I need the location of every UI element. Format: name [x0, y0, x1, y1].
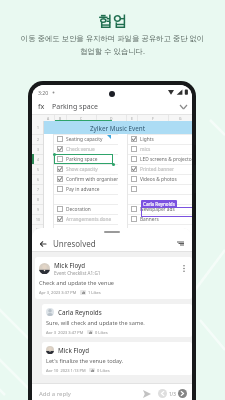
staticText: 1 Likes	[88, 290, 101, 295]
staticText: 4	[37, 157, 39, 162]
button[interactable]: Filter	[175, 238, 186, 249]
button[interactable]: Arrangements done	[54, 214, 118, 224]
staticText: 이동 중에도 보안을 유지하며 파일을 공유하고 중단 없이 협업할 수 있습니…	[6, 33, 219, 56]
staticText: 11	[36, 227, 40, 232]
staticText: Mick Floyd	[58, 346, 90, 354]
staticText: A	[47, 116, 50, 121]
staticText: Newspaper ads	[140, 206, 175, 213]
staticText: 15	[36, 267, 40, 272]
staticText: 3	[37, 147, 39, 152]
staticText: Confirm with organisers	[66, 176, 118, 183]
button[interactable]: Pay in advance	[54, 184, 118, 194]
staticText: 9	[37, 207, 39, 212]
staticText: Printed banner	[140, 166, 174, 173]
staticText: Zylker Music Event	[90, 124, 146, 132]
staticText: D	[110, 116, 113, 121]
staticText: Pay in advance	[66, 186, 100, 193]
button[interactable]: Decoration	[54, 204, 118, 214]
staticText: Apr 10, 2023 1:13 PM	[46, 368, 86, 372]
staticText: Apr 3, 2023 3:47 PM	[46, 330, 84, 334]
staticText: Apr 3, 2023 3:37 PM	[39, 290, 77, 295]
staticText: Seating capacity	[66, 136, 103, 143]
staticText: G	[179, 116, 182, 121]
staticText: fx	[38, 102, 45, 112]
staticText: Let's finalize the venue today.	[46, 357, 124, 365]
button[interactable]	[54, 224, 118, 234]
staticText: Lights	[140, 136, 154, 143]
button[interactable]: More options	[179, 264, 188, 273]
staticText: 1	[37, 125, 39, 130]
button[interactable]: Lights	[128, 134, 192, 144]
staticText: mics	[140, 146, 151, 153]
staticText: Sure, will check and update the same.	[46, 319, 145, 327]
staticText: Decoration	[66, 206, 91, 213]
staticText: 6	[37, 177, 39, 182]
button[interactable]	[128, 234, 192, 244]
button[interactable]	[128, 194, 192, 204]
button[interactable]: mics	[128, 144, 192, 154]
staticText: Venue	[46, 302, 51, 312]
staticText: Arrangements done	[66, 216, 112, 223]
staticText: 5	[37, 167, 39, 172]
staticText: 0 Likes	[97, 368, 110, 372]
staticText: Parking space	[66, 156, 98, 163]
button[interactable]: Printed banner	[128, 164, 192, 174]
staticText: E	[131, 116, 133, 121]
button[interactable]: Back	[37, 238, 48, 249]
staticText: Check and update the venue	[39, 279, 115, 287]
staticText: 8	[37, 197, 39, 202]
button[interactable]	[128, 224, 192, 234]
staticText: Mick Floyd	[54, 261, 86, 269]
button[interactable]: Check venue	[54, 144, 118, 154]
button[interactable]: LED screens & projectors	[128, 154, 192, 164]
staticText: F	[152, 116, 154, 121]
staticText: Event Checklist A1:G1	[54, 270, 101, 276]
staticText: Check venue	[66, 146, 95, 153]
button[interactable]: Show capacity	[54, 164, 118, 174]
staticText: Carla Reynolds	[58, 308, 102, 316]
staticText: 협업	[0, 12, 225, 30]
staticText: C	[80, 116, 83, 121]
staticText: B	[59, 116, 62, 121]
other: Expand	[180, 105, 187, 109]
staticText: 0 Likes	[95, 330, 108, 334]
button[interactable]: ​	[128, 184, 192, 194]
button[interactable]: Previous comment	[158, 389, 167, 398]
button[interactable]: Videos & photos	[128, 174, 192, 184]
staticText: Equipments	[120, 302, 125, 312]
staticText: Banners	[140, 216, 159, 223]
staticText: Show capacity	[66, 166, 98, 173]
staticText: 2	[37, 137, 39, 142]
button[interactable]	[54, 194, 118, 204]
staticText: 3:20	[38, 89, 49, 96]
button[interactable]: Banners	[128, 214, 192, 224]
staticText: 13	[36, 247, 40, 252]
staticText: Add a reply	[39, 390, 71, 398]
button[interactable]: Confirm with organisers	[54, 174, 118, 184]
button[interactable]: Newspaper ads	[128, 204, 192, 214]
staticText: Carla Reynolds	[143, 201, 175, 207]
staticText: Videos & photos	[140, 176, 177, 183]
button[interactable]: Next comment	[178, 389, 187, 398]
button[interactable]: Seating capacity	[54, 134, 118, 144]
button[interactable]: Parking space	[54, 154, 118, 164]
button[interactable]: Mick Floyd	[42, 342, 192, 375]
staticText: 7	[37, 187, 39, 192]
button[interactable]: Carla Reynolds	[42, 304, 192, 337]
button[interactable]: Mick Floyd	[35, 257, 192, 299]
staticText: Unresolved	[53, 238, 96, 249]
button[interactable]: Send	[141, 388, 153, 400]
staticText: Parking space	[52, 102, 98, 112]
staticText: LED screens & projectors	[140, 156, 192, 163]
staticText: 1/3	[169, 391, 176, 397]
staticText: 10	[36, 217, 40, 222]
